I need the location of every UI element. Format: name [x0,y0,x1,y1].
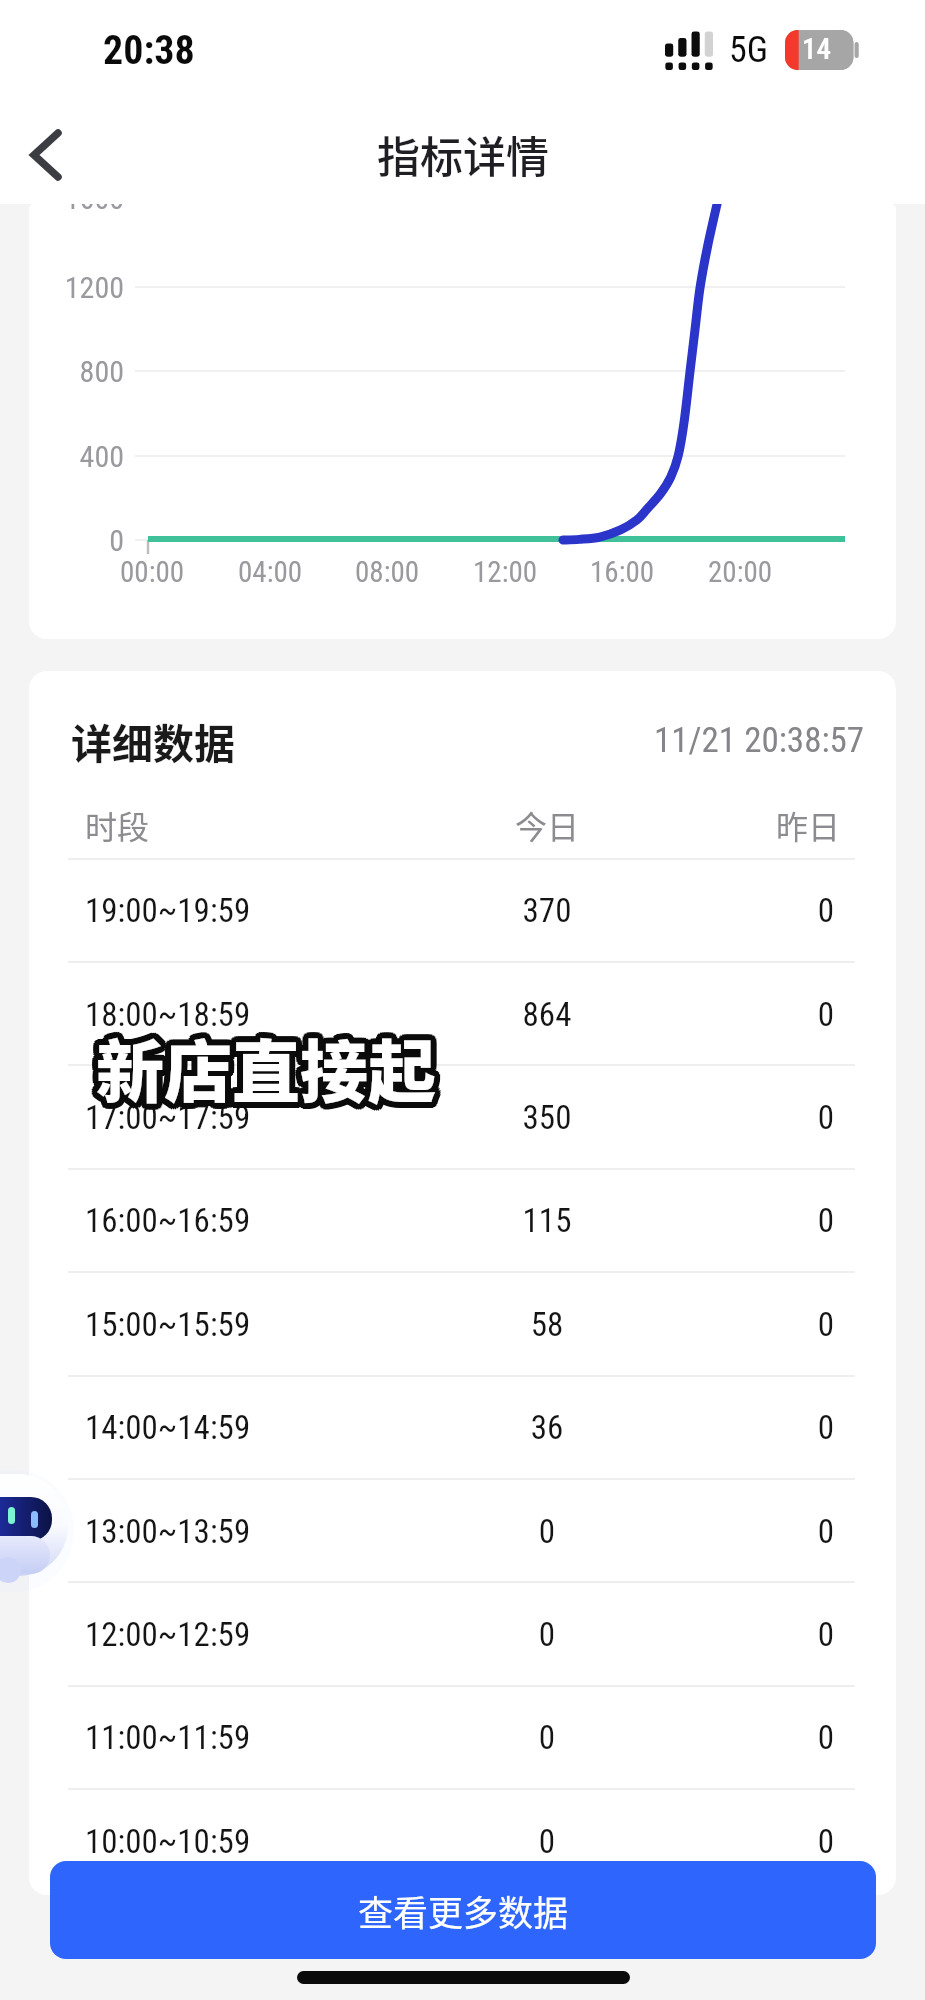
staticText: 12:00~12:59 [85,1615,251,1654]
staticText: 1600 [64,204,124,216]
staticText: 20:00 [708,555,773,589]
staticText: 新店直接起 [90,1016,431,1114]
staticText: 864 [457,995,637,1034]
staticText: 新店直接起 [98,1024,439,1122]
button[interactable]: 18:00~18:59 [29,963,896,1065]
staticText: 14:00~14:59 [85,1408,251,1447]
staticText: 0 [736,995,896,1034]
staticText: 新店直接起 [102,1020,443,1118]
staticText: 04:00 [238,555,303,589]
staticText: 今日 [477,802,617,848]
button[interactable]: 17:00~17:59 [29,1066,896,1168]
staticText: 时段 [85,802,150,848]
button[interactable]: 19:00~19:59 [29,859,896,961]
staticText: 新店直接起 [90,1020,431,1118]
staticText: 5G [729,29,769,71]
staticText: 查看更多数据 [358,1885,569,1936]
staticText: 16:00 [590,555,655,589]
staticText: 19:00~19:59 [85,891,251,930]
staticText: 新店直接起 [94,1012,435,1110]
staticText: 昨日 [738,802,878,848]
staticText: 0 [736,1822,896,1861]
staticText: 11:00~11:59 [85,1718,251,1757]
staticText: 12:00 [473,555,538,589]
staticText: 08:00 [355,555,420,589]
staticText: 0 [736,1408,896,1447]
staticText: 00:00 [120,555,185,589]
staticText: 新店直接起 [96,1018,437,1116]
button[interactable]: 13:00~13:59 [29,1480,896,1582]
button[interactable]: 11:00~11:59 [29,1686,896,1788]
staticText: 17:00~17:59 [85,1098,251,1137]
staticText: 新店直接起 [96,1012,437,1110]
staticText: 新店直接起 [98,1012,439,1110]
staticText: 新店直接起 [102,1018,443,1116]
staticText: 新店直接起 [101,1014,442,1112]
staticText: 新店直接起 [91,1022,432,1120]
staticText: 0 [736,1201,896,1240]
staticText: 新店直接起 [102,1016,443,1114]
button[interactable]: 14:00~14:59 [29,1376,896,1478]
staticText: 1200 [64,270,124,305]
staticText: 350 [457,1098,637,1137]
staticText: 0 [736,1512,896,1551]
staticText: 新店直接起 [96,1024,437,1122]
button[interactable]: 12:00~12:59 [29,1583,896,1685]
staticText: 0 [736,1718,896,1757]
staticText: 0 [457,1615,637,1654]
button[interactable]: 查看更多数据 [50,1861,876,1959]
button[interactable]: 10:00~10:59 [29,1790,896,1892]
staticText: 新店直接起 [94,1024,435,1122]
button[interactable]: AI assistant [0,1460,100,1610]
staticText: 0 [109,523,124,558]
staticText: 新店直接起 [92,1013,433,1111]
staticText: 115 [457,1201,637,1240]
staticText: 14 [802,32,831,66]
staticText: 370 [457,891,637,930]
staticText: 36 [457,1408,637,1447]
staticText: 0 [736,891,896,930]
staticText: 11/21 20:38:57 [654,720,865,761]
staticText: 新店直接起 [92,1023,433,1121]
staticText: 新店直接起 [91,1014,432,1112]
staticText: 800 [79,354,124,389]
staticText: 新店直接起 [100,1013,441,1111]
staticText: 0 [736,1305,896,1344]
staticText: 指标详情 [377,123,549,185]
staticText: 0 [736,1615,896,1654]
staticText: 0 [457,1718,637,1757]
staticText: 详细数据 [71,711,235,770]
staticText: 10:00~10:59 [85,1822,251,1861]
staticText: 15:00~15:59 [85,1305,251,1344]
staticText: 20:38 [103,27,195,74]
button[interactable]: 16:00~16:59 [29,1169,896,1271]
staticText: 18:00~18:59 [85,995,251,1034]
staticText: 0 [736,1098,896,1137]
staticText: 新店直接起 [101,1022,442,1120]
staticText: 16:00~16:59 [85,1201,251,1240]
staticText: 新店直接起 [100,1023,441,1121]
staticText: 58 [457,1305,637,1344]
button[interactable]: Back [0,103,98,207]
staticText: 0 [457,1512,637,1551]
staticText: 0 [457,1822,637,1861]
staticText: 新店直接起 [90,1018,431,1116]
staticText: 13:00~13:59 [85,1512,251,1551]
button[interactable]: 15:00~15:59 [29,1273,896,1375]
staticText: 400 [79,439,124,474]
